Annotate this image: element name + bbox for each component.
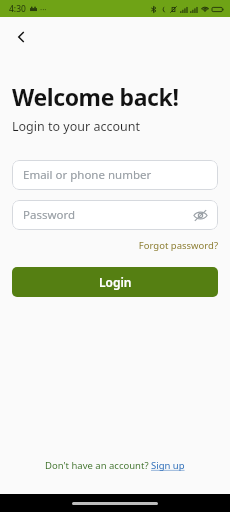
button[interactable]: Back bbox=[6, 22, 36, 52]
staticText: ··· bbox=[40, 4, 47, 15]
staticText: Don't have an account? bbox=[45, 459, 151, 472]
staticText: Welcome back! bbox=[12, 81, 179, 112]
button[interactable]: Login bbox=[12, 267, 218, 297]
button[interactable]: Forgot password? bbox=[138, 239, 218, 252]
button[interactable]: Password bbox=[12, 200, 218, 230]
button[interactable]: Show password bbox=[189, 204, 211, 226]
staticText: Password bbox=[23, 207, 76, 223]
button[interactable]: Email or phone number bbox=[12, 160, 218, 190]
button[interactable]: Sign up bbox=[151, 459, 185, 472]
staticText: 4:30 bbox=[9, 3, 26, 15]
staticText: Login to your account bbox=[12, 118, 140, 135]
staticText: Email or phone number bbox=[23, 167, 152, 183]
staticText: Login bbox=[99, 274, 132, 290]
staticText: Forgot password? bbox=[138, 239, 218, 252]
staticText: Sign up bbox=[151, 459, 185, 472]
